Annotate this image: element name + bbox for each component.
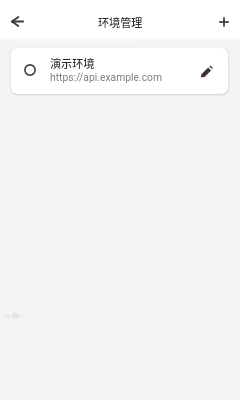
staticText: https://api.example.com: [50, 71, 162, 83]
button[interactable]: Add: [209, 7, 238, 36]
button[interactable]: Back: [3, 7, 32, 36]
button[interactable]: 演示环境: [11, 48, 228, 94]
button[interactable]: Edit: [184, 48, 228, 94]
staticText: 演示环境: [50, 55, 95, 71]
staticText: 环境管理: [98, 14, 143, 30]
